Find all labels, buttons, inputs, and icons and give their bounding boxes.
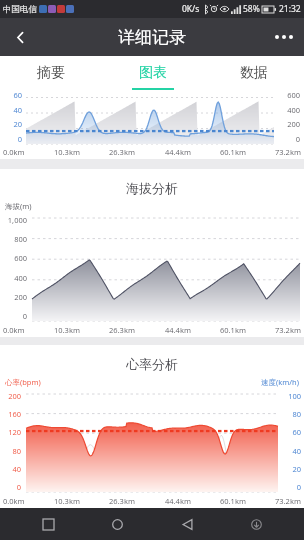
staticText: 0.0km bbox=[3, 325, 25, 335]
staticText: 600 bbox=[287, 90, 300, 100]
staticText: 21:32 bbox=[279, 3, 301, 15]
button[interactable]: Back bbox=[0, 18, 40, 56]
staticText: 详细记录 bbox=[118, 27, 186, 48]
staticText: 10.3km bbox=[54, 325, 80, 335]
staticText: 0.0km bbox=[3, 147, 25, 157]
staticText: 200 bbox=[14, 292, 27, 302]
staticText: 40 bbox=[292, 446, 301, 456]
staticText: 160 bbox=[8, 409, 21, 419]
staticText: 44.4km bbox=[165, 147, 191, 157]
button[interactable]: 数据 bbox=[203, 56, 304, 90]
staticText: 海拔分析 bbox=[0, 180, 304, 196]
staticText: 20 bbox=[13, 119, 22, 129]
staticText: 0.0km bbox=[3, 496, 25, 506]
staticText: 海拔(m) bbox=[5, 201, 32, 211]
staticText: 80 bbox=[292, 409, 301, 419]
staticText: 120 bbox=[8, 427, 21, 437]
staticText: 58% bbox=[243, 3, 260, 15]
staticText: 400 bbox=[287, 105, 300, 115]
button[interactable]: Back bbox=[166, 508, 208, 540]
staticText: 60 bbox=[13, 90, 22, 100]
staticText: 速度(km/h) bbox=[261, 377, 299, 387]
staticText: 44.4km bbox=[165, 496, 191, 506]
staticText: 中国电信 bbox=[3, 4, 37, 15]
staticText: 100 bbox=[288, 391, 301, 401]
staticText: 0K/s bbox=[182, 3, 200, 15]
staticText: 0 bbox=[17, 134, 22, 144]
staticText: 26.3km bbox=[109, 325, 135, 335]
staticText: 26.3km bbox=[109, 147, 135, 157]
button[interactable]: More options bbox=[264, 18, 304, 56]
staticText: 44.4km bbox=[165, 325, 191, 335]
staticText: 73.2km bbox=[275, 325, 301, 335]
button[interactable]: Home bbox=[96, 508, 138, 540]
staticText: 800 bbox=[14, 234, 27, 244]
staticText: 200 bbox=[287, 119, 300, 129]
staticText: 心率(bpm) bbox=[5, 377, 41, 387]
staticText: 图表 bbox=[139, 64, 167, 82]
staticText: 20 bbox=[292, 464, 301, 474]
staticText: 73.2km bbox=[275, 496, 301, 506]
button[interactable]: Hide keyboard bbox=[235, 508, 277, 540]
staticText: 60.1km bbox=[220, 325, 246, 335]
staticText: 73.2km bbox=[275, 147, 301, 157]
staticText: 40 bbox=[12, 464, 21, 474]
staticText: 400 bbox=[14, 273, 27, 283]
staticText: 26.3km bbox=[109, 496, 135, 506]
staticText: 10.3km bbox=[54, 496, 80, 506]
button[interactable]: 图表 bbox=[102, 56, 203, 90]
staticText: 数据 bbox=[240, 64, 268, 82]
staticText: 60.1km bbox=[220, 496, 246, 506]
staticText: 0 bbox=[22, 311, 27, 321]
staticText: 0 bbox=[296, 482, 301, 492]
staticText: 10.3km bbox=[54, 147, 80, 157]
staticText: 80 bbox=[12, 446, 21, 456]
staticText: 0 bbox=[16, 482, 21, 492]
staticText: 摘要 bbox=[37, 64, 65, 82]
button[interactable]: 摘要 bbox=[0, 56, 102, 90]
staticText: 心率分析 bbox=[0, 356, 304, 372]
staticText: 200 bbox=[8, 391, 21, 401]
staticText: 600 bbox=[14, 253, 27, 263]
staticText: 0 bbox=[295, 134, 300, 144]
staticText: 60 bbox=[292, 427, 301, 437]
staticText: 60.1km bbox=[220, 147, 246, 157]
button[interactable]: Recents bbox=[27, 508, 69, 540]
staticText: 40 bbox=[13, 105, 22, 115]
staticText: 1,000 bbox=[7, 215, 27, 225]
